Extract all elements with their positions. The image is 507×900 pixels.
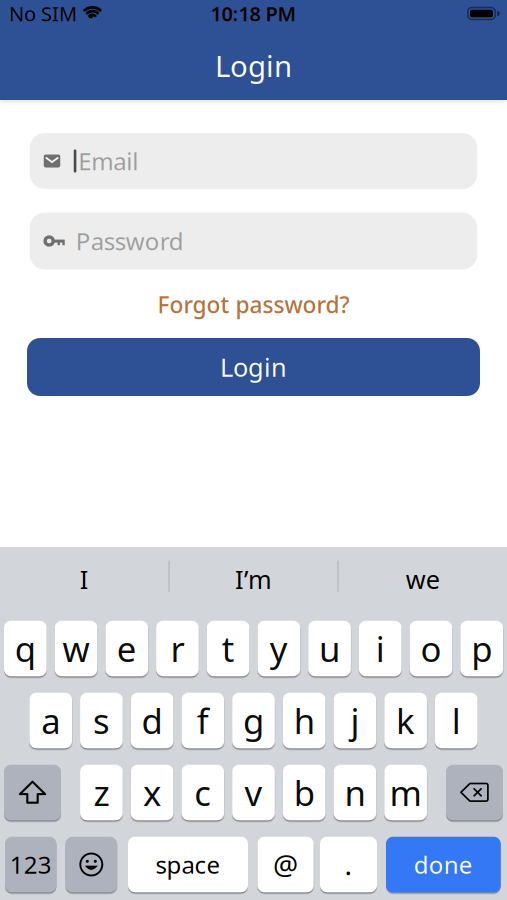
button[interactable]: @	[257, 837, 314, 892]
button[interactable]: Delete	[446, 765, 503, 820]
staticText: I	[80, 562, 89, 596]
staticText: Password	[76, 225, 184, 257]
staticText: e	[117, 625, 137, 671]
staticText: l	[452, 697, 461, 743]
staticText: h	[294, 697, 315, 743]
staticText: r	[170, 625, 184, 671]
staticText: w	[63, 625, 90, 671]
staticText: c	[194, 769, 211, 815]
staticText: Forgot password?	[157, 289, 349, 319]
staticText: Login	[220, 350, 287, 384]
button[interactable]: v	[232, 765, 275, 820]
button[interactable]: x	[131, 765, 173, 820]
staticText: f	[197, 697, 209, 743]
button[interactable]: n	[334, 765, 376, 820]
button[interactable]: Email	[30, 133, 477, 189]
staticText: m	[390, 769, 422, 815]
staticText: b	[294, 769, 315, 815]
staticText: space	[155, 849, 220, 880]
button[interactable]: u	[308, 621, 351, 676]
button[interactable]: y	[257, 621, 300, 676]
button[interactable]: c	[181, 765, 224, 820]
button[interactable]: p	[460, 621, 503, 676]
staticText: x	[143, 769, 161, 815]
staticText: k	[396, 697, 415, 743]
button[interactable]: Forgot password?	[157, 292, 349, 316]
staticText: y	[270, 625, 288, 671]
staticText: a	[41, 697, 60, 743]
staticText: I’m	[235, 562, 272, 596]
staticText: t	[222, 625, 235, 671]
button[interactable]: h	[283, 693, 326, 748]
button[interactable]: w	[55, 621, 97, 676]
staticText: Login	[215, 46, 292, 85]
staticText: s	[93, 697, 110, 743]
staticText: q	[15, 625, 36, 671]
staticText: g	[243, 697, 264, 743]
staticText: done	[414, 849, 473, 880]
button[interactable]: o	[410, 621, 452, 676]
button[interactable]: Login	[27, 338, 480, 396]
staticText: Email	[78, 145, 138, 177]
button[interactable]: Shift	[4, 765, 61, 820]
button[interactable]: Numbers	[5, 837, 56, 892]
button[interactable]: I	[0, 547, 168, 606]
staticText: n	[344, 769, 365, 815]
staticText: u	[319, 625, 340, 671]
staticText: @	[273, 846, 298, 883]
staticText: .	[344, 846, 352, 883]
button[interactable]: Password	[30, 212, 477, 269]
button[interactable]: we	[339, 547, 507, 606]
staticText: o	[420, 625, 441, 671]
button[interactable]: Emoji	[66, 837, 117, 892]
button[interactable]: r	[156, 621, 199, 676]
button[interactable]: i	[359, 621, 402, 676]
button[interactable]: j	[334, 693, 376, 748]
button[interactable]: e	[105, 621, 148, 676]
button[interactable]: g	[232, 693, 275, 748]
button[interactable]: m	[384, 765, 427, 820]
button[interactable]: a	[29, 693, 72, 748]
staticText: p	[471, 625, 492, 671]
staticText: 10:18 PM	[210, 0, 296, 27]
button[interactable]: I’m	[170, 547, 337, 606]
button[interactable]: b	[283, 765, 326, 820]
staticText: 123	[10, 849, 52, 880]
button[interactable]: d	[131, 693, 173, 748]
staticText: No SIM	[9, 0, 77, 27]
staticText: j	[350, 697, 359, 743]
button[interactable]: space	[128, 837, 248, 892]
staticText: d	[142, 697, 163, 743]
button[interactable]: z	[80, 765, 123, 820]
staticText: we	[406, 562, 440, 596]
button[interactable]: l	[435, 693, 478, 748]
button[interactable]: done	[386, 837, 501, 892]
button[interactable]: k	[384, 693, 427, 748]
staticText: i	[376, 625, 385, 671]
staticText: v	[244, 769, 262, 815]
button[interactable]: .	[320, 837, 377, 892]
button[interactable]: t	[207, 621, 249, 676]
button[interactable]: s	[80, 693, 123, 748]
button[interactable]: q	[4, 621, 47, 676]
button[interactable]: f	[181, 693, 224, 748]
staticText: z	[93, 769, 109, 815]
